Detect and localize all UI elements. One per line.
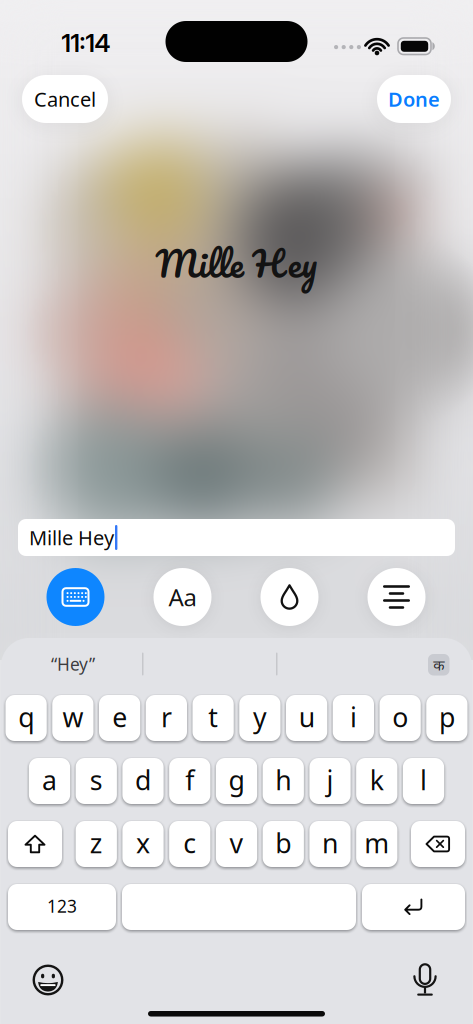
staticText: n xyxy=(322,825,338,861)
button[interactable]: Cancel xyxy=(22,75,108,123)
staticText: w xyxy=(62,699,83,735)
button[interactable]: i xyxy=(333,695,374,741)
button[interactable]: v xyxy=(216,821,257,867)
staticText: d xyxy=(135,762,151,798)
staticText: a xyxy=(42,762,57,798)
button[interactable]: Emoji xyxy=(26,958,70,1002)
staticText: v xyxy=(229,825,243,861)
staticText: b xyxy=(275,825,291,861)
staticText: z xyxy=(90,825,103,861)
button[interactable]: Keyboard xyxy=(46,568,104,626)
button[interactable]: w xyxy=(52,695,93,741)
button[interactable]: h xyxy=(263,758,304,804)
staticText: p xyxy=(439,699,455,735)
button[interactable]: space xyxy=(122,884,356,930)
button[interactable]: n xyxy=(309,821,351,867)
staticText: “Hey” xyxy=(51,652,95,675)
button[interactable]: e xyxy=(99,695,140,741)
button[interactable]: Text style xyxy=(153,568,211,626)
staticText: y xyxy=(253,699,267,735)
staticText: Done xyxy=(388,86,440,112)
staticText: g xyxy=(228,762,244,798)
button[interactable]: p xyxy=(426,695,467,741)
button[interactable]: Done xyxy=(377,75,451,123)
button[interactable]: c xyxy=(169,821,210,867)
button[interactable]: “Hey” xyxy=(13,649,133,679)
button[interactable]: j xyxy=(309,758,351,804)
button[interactable]: k xyxy=(356,758,397,804)
button[interactable]: a xyxy=(29,758,70,804)
staticText: Aa xyxy=(168,581,196,613)
button[interactable]: q xyxy=(5,695,47,741)
staticText: u xyxy=(299,699,315,735)
button[interactable]: m xyxy=(356,821,397,867)
button[interactable]: Next keyboard xyxy=(428,654,449,675)
staticText: i xyxy=(350,699,357,735)
button[interactable]: Text alignment xyxy=(367,568,425,626)
button[interactable]: g xyxy=(216,758,257,804)
staticText: q xyxy=(18,699,34,735)
button[interactable]: t xyxy=(192,695,234,741)
button[interactable]: f xyxy=(169,758,210,804)
button[interactable]: 123 xyxy=(8,884,116,930)
staticText: l xyxy=(420,762,427,798)
staticText: Mille Hey xyxy=(155,233,317,293)
staticText: x xyxy=(136,825,150,861)
button[interactable]: Return xyxy=(362,884,465,930)
button[interactable]: Delete xyxy=(411,821,465,867)
staticText: 123 xyxy=(47,894,77,917)
staticText: t xyxy=(208,699,218,735)
staticText: j xyxy=(326,762,333,798)
staticText: m xyxy=(364,825,389,861)
button[interactable]: z xyxy=(76,821,117,867)
staticText: o xyxy=(392,699,408,735)
button[interactable]: x xyxy=(122,821,164,867)
staticText: क xyxy=(433,655,444,674)
button[interactable]: Color xyxy=(260,568,318,626)
button[interactable]: o xyxy=(379,695,421,741)
staticText: h xyxy=(275,762,291,798)
staticText: f xyxy=(185,762,194,798)
button[interactable]: y xyxy=(239,695,280,741)
button[interactable]: s xyxy=(76,758,117,804)
staticText: Cancel xyxy=(34,86,96,112)
button[interactable]: Shift xyxy=(8,821,62,867)
staticText: Mille Hey xyxy=(29,524,114,551)
button[interactable]: l xyxy=(403,758,444,804)
button[interactable]: Dictate xyxy=(403,958,447,1002)
staticText: 11:14 xyxy=(61,28,110,58)
button[interactable]: b xyxy=(263,821,304,867)
staticText: e xyxy=(112,699,127,735)
button[interactable]: u xyxy=(286,695,327,741)
staticText: k xyxy=(370,762,384,798)
staticText: r xyxy=(161,699,172,735)
button[interactable]: d xyxy=(122,758,164,804)
staticText: c xyxy=(183,825,196,861)
button[interactable]: r xyxy=(146,695,187,741)
staticText: s xyxy=(90,762,103,798)
